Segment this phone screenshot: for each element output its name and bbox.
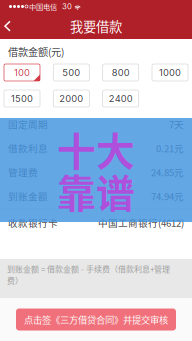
staticText: 100: [14, 67, 30, 78]
staticText: 固定周期: [8, 117, 48, 131]
staticText: 管理费: [8, 165, 38, 179]
staticText: 800: [112, 67, 130, 78]
staticText: 我要借款: [70, 16, 122, 36]
staticText: 24.85元: [151, 165, 184, 179]
button[interactable]: 1000: [152, 64, 188, 81]
staticText: 0.21元: [156, 141, 184, 155]
button[interactable]: 800: [103, 64, 139, 81]
staticText: 1500: [11, 93, 33, 104]
staticText: 1000: [159, 67, 181, 78]
staticText: 中国电信: [29, 1, 57, 12]
button[interactable]: 2400: [103, 90, 139, 107]
staticText: 到账金额: [8, 189, 48, 203]
button[interactable]: 1500: [4, 90, 40, 107]
staticText: 靠谱: [57, 163, 135, 219]
staticText: 到账金额 = 借款金额 - 手续费（借款利息+管理费）: [7, 263, 170, 286]
button[interactable]: 点击签《三方借贷合同》并提交审核: [16, 308, 176, 330]
button[interactable]: 2000: [53, 90, 89, 107]
button[interactable]: Back: [0, 13, 19, 39]
staticText: 中国工商银行(4612): [98, 215, 184, 229]
staticText: 收款银行卡: [8, 215, 58, 229]
button[interactable]: 100: [4, 64, 40, 81]
staticText: 借款利息: [8, 141, 48, 155]
button[interactable]: 500: [53, 64, 89, 81]
staticText: 30: [62, 2, 72, 11]
staticText: 74.94元: [151, 189, 184, 203]
staticText: 2000: [59, 93, 83, 104]
staticText: 十大: [57, 121, 135, 177]
staticText: 点击签《三方借贷合同》并提交审核: [24, 313, 168, 326]
staticText: 借款金额(元): [8, 44, 64, 59]
staticText: 500: [62, 67, 80, 78]
button[interactable]: 收款银行卡: [0, 208, 192, 236]
staticText: 7天: [169, 117, 184, 131]
staticText: 2400: [109, 93, 133, 104]
